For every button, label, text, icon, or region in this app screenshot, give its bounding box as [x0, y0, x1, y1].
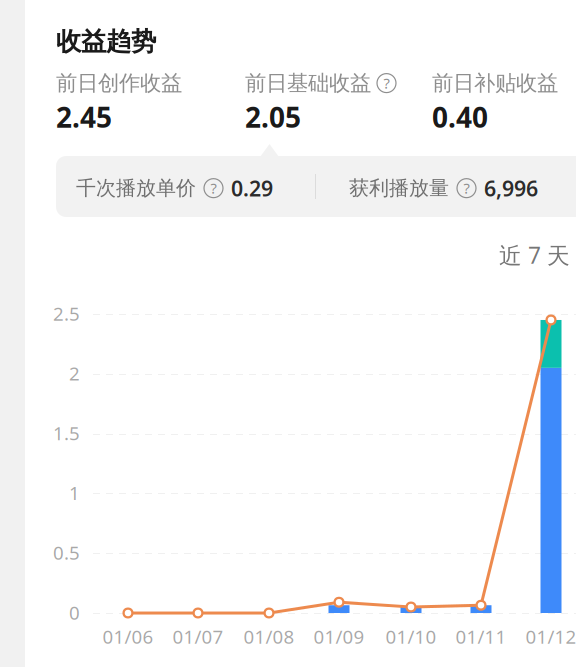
- staticText: 01/10: [385, 624, 436, 649]
- staticText: 01/07: [172, 624, 223, 649]
- staticText: 2: [69, 361, 80, 386]
- staticText: 2.45: [56, 98, 112, 135]
- staticText: 0.29: [231, 174, 273, 202]
- staticText: 2.05: [245, 98, 301, 135]
- staticText: 1: [69, 480, 80, 505]
- staticText: 获利播放量: [349, 176, 449, 200]
- staticText: 1.5: [53, 421, 80, 445]
- staticText: 千次播放单价: [76, 176, 196, 200]
- staticText: 前日补贴收益: [432, 70, 558, 96]
- staticText: 收益趋势: [56, 26, 156, 57]
- staticText: ?: [463, 178, 469, 198]
- staticText: 0.40: [432, 98, 488, 135]
- staticText: 前日创作收益: [56, 70, 182, 96]
- staticText: 2.5: [53, 301, 80, 326]
- button[interactable]: 前日基础收益: [245, 70, 396, 135]
- staticText: 前日基础收益: [245, 70, 371, 96]
- staticText: 01/12: [525, 624, 576, 649]
- staticText: 6,996: [484, 174, 538, 202]
- button[interactable]: 前日创作收益: [56, 70, 182, 135]
- button[interactable]: 近 7 天: [499, 240, 576, 270]
- staticText: ?: [383, 73, 389, 93]
- staticText: 01/11: [455, 624, 506, 649]
- staticText: 01/08: [243, 624, 294, 649]
- button[interactable]: 千次播放单价: [76, 174, 273, 202]
- staticText: 01/09: [313, 624, 364, 649]
- staticText: ?: [210, 178, 216, 198]
- staticText: 近 7 天: [499, 240, 570, 270]
- staticText: 0.5: [53, 540, 80, 565]
- button[interactable]: 前日补贴收益: [432, 70, 558, 135]
- button[interactable]: 获利播放量: [349, 174, 538, 202]
- staticText: 01/06: [102, 624, 153, 649]
- staticText: 0: [69, 600, 80, 625]
